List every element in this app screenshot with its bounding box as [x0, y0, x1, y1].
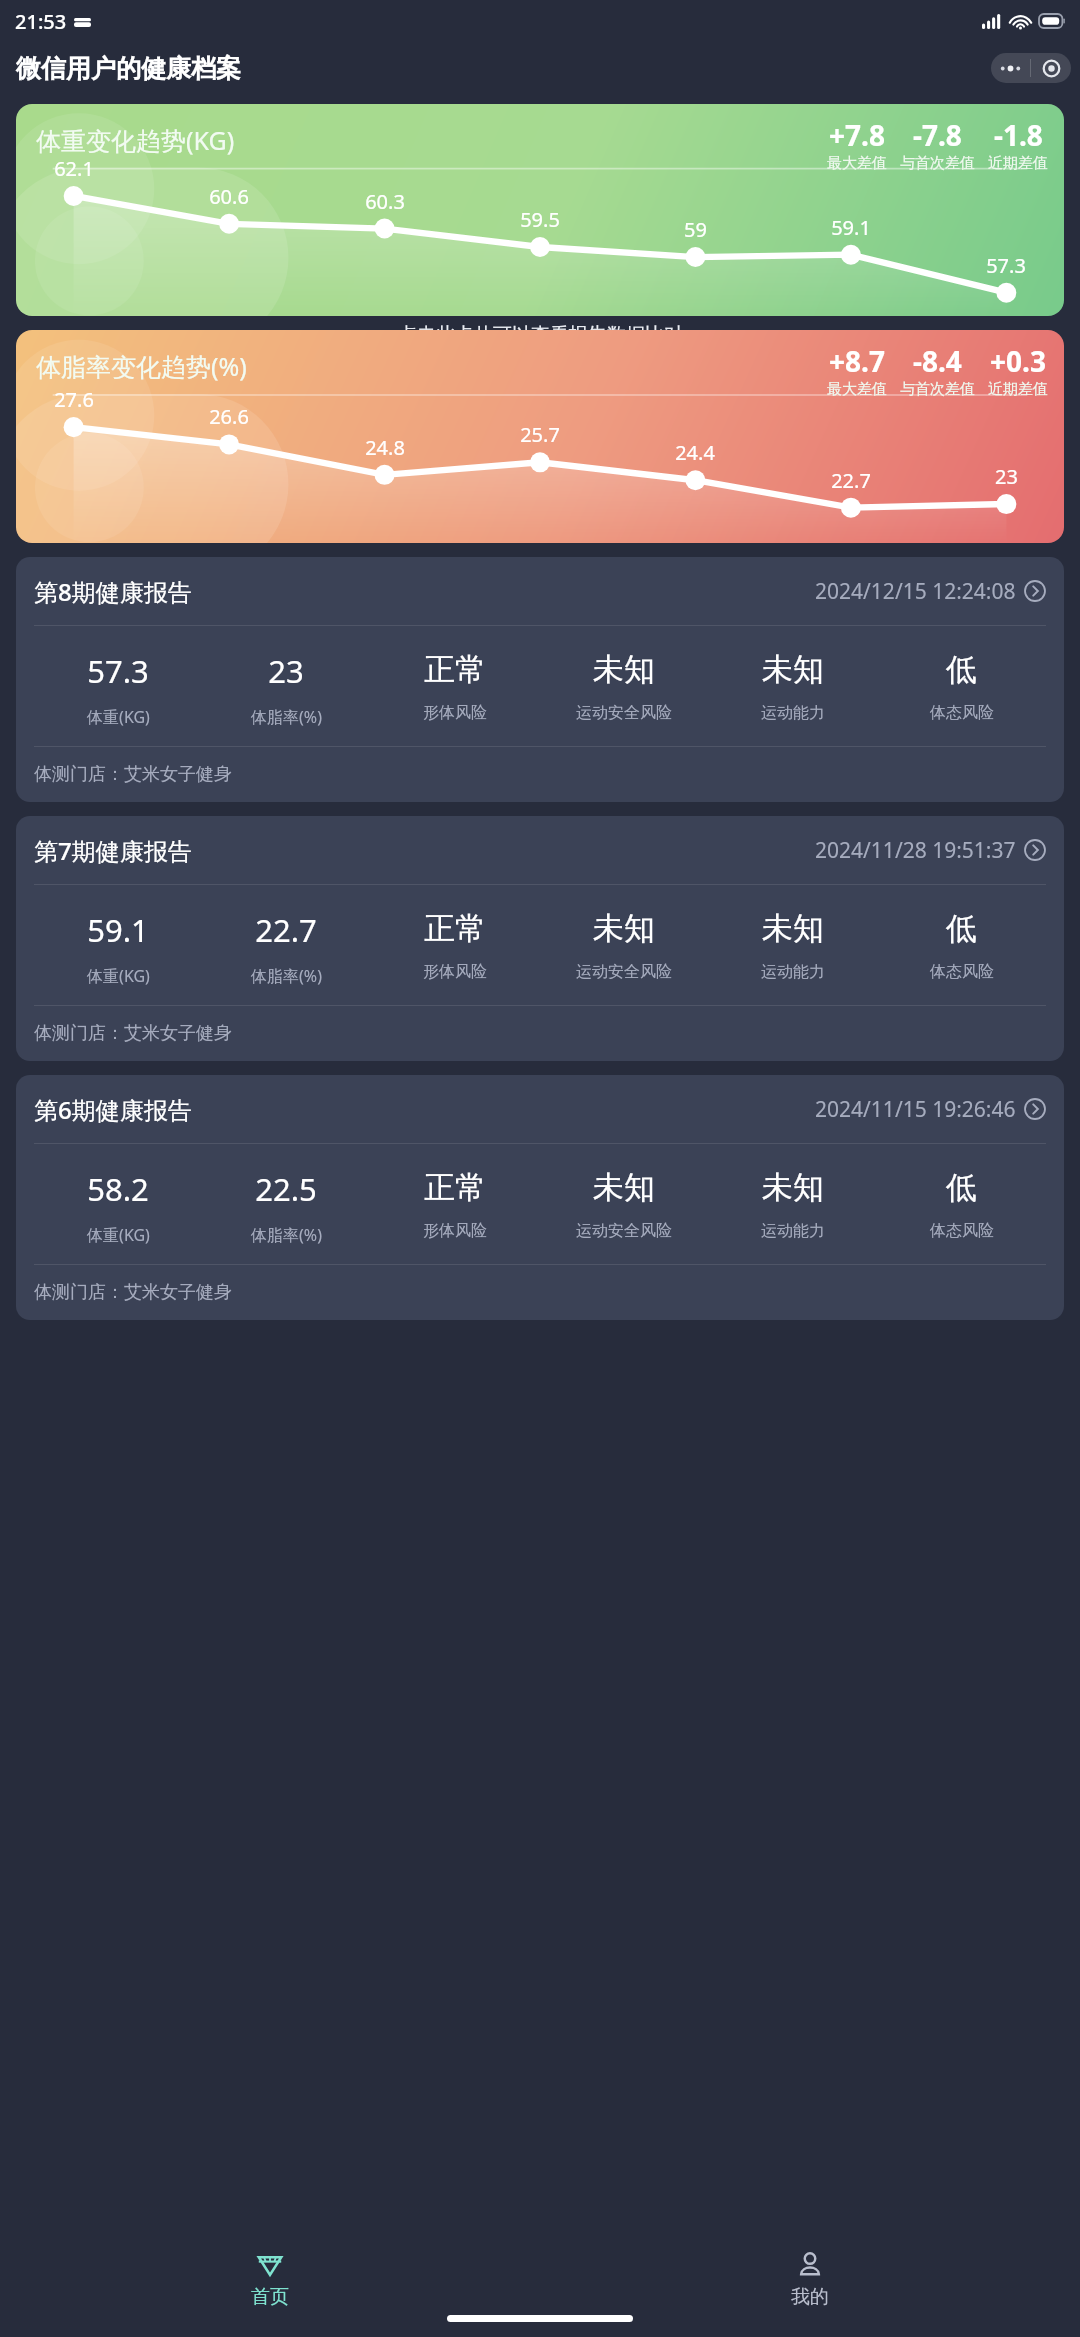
staticText: +8.7: [829, 342, 885, 380]
staticText: 运动安全风险: [576, 1221, 672, 1241]
staticText: 21:53: [15, 8, 67, 35]
staticText: 60.3: [365, 188, 405, 215]
staticText: 未知: [593, 909, 655, 948]
staticText: +0.3: [990, 342, 1046, 380]
staticText: 未知: [762, 1168, 824, 1207]
staticText: 形体风险: [423, 703, 487, 723]
staticText: 体态风险: [930, 1221, 994, 1241]
button[interactable]: Close: [1031, 53, 1071, 83]
staticText: 体态风险: [930, 703, 994, 723]
staticText: 点击此卡片可以查看报告数据比对: [398, 323, 683, 347]
staticText: -7.8: [913, 116, 962, 154]
staticText: 2024/11/28 19:51:37: [815, 836, 1016, 865]
staticText: 59: [684, 216, 707, 243]
staticText: 低: [946, 909, 977, 948]
staticText: 2024/11/15 19:26:46: [815, 1095, 1016, 1124]
staticText: 体测门店：艾米女子健身: [34, 763, 232, 786]
staticText: 体测门店：艾米女子健身: [34, 1281, 232, 1304]
staticText: 59.1: [831, 214, 871, 241]
staticText: 62.1: [54, 155, 94, 182]
staticText: 低: [946, 1168, 977, 1207]
staticText: 体态风险: [930, 962, 994, 982]
staticText: 正常: [424, 650, 486, 689]
staticText: 体重(KG): [87, 1224, 150, 1246]
staticText: 59.1: [87, 909, 149, 951]
button[interactable]: 第8期健康报告: [16, 557, 1064, 802]
button[interactable]: 首页: [0, 2237, 540, 2315]
staticText: 运动能力: [761, 703, 825, 723]
staticText: 57.3: [87, 650, 149, 692]
staticText: 形体风险: [423, 1221, 487, 1241]
staticText: 24.8: [365, 434, 405, 461]
staticText: 22.7: [255, 909, 317, 951]
staticText: 体重(KG): [87, 706, 150, 728]
staticText: 23: [268, 650, 304, 692]
staticText: 低: [946, 650, 977, 689]
staticText: 体测门店：艾米女子健身: [34, 1022, 232, 1045]
staticText: 微信用户的健康档案: [16, 53, 241, 84]
staticText: 未知: [762, 909, 824, 948]
staticText: 近期差值: [988, 154, 1048, 173]
staticText: 体脂率(%): [251, 706, 322, 728]
staticText: 体脂率变化趋势(%): [36, 349, 247, 383]
staticText: 运动安全风险: [576, 703, 672, 723]
staticText: 57.3: [986, 252, 1026, 279]
staticText: 运动能力: [761, 1221, 825, 1241]
staticText: 未知: [762, 650, 824, 689]
staticText: 与首次差值: [900, 154, 975, 173]
button[interactable]: 第6期健康报告: [16, 1075, 1064, 1320]
staticText: 22.7: [831, 467, 871, 494]
staticText: 体重(KG): [87, 965, 150, 987]
staticText: +7.8: [829, 116, 885, 154]
staticText: 运动能力: [761, 962, 825, 982]
staticText: 26.6: [209, 403, 249, 430]
staticText: 第7期健康报告: [34, 834, 192, 867]
staticText: 体脂率(%): [251, 1224, 322, 1246]
staticText: 23: [995, 463, 1018, 490]
staticText: -1.8: [994, 116, 1043, 154]
staticText: 59.5: [520, 206, 560, 233]
staticText: 2024/12/15 12:24:08: [815, 577, 1016, 606]
staticText: 58.2: [87, 1168, 149, 1210]
staticText: 22.5: [255, 1168, 317, 1210]
staticText: 最大差值: [827, 380, 887, 399]
button[interactable]: 第7期健康报告: [16, 816, 1064, 1061]
staticText: 体重变化趋势(KG): [36, 123, 235, 157]
staticText: 首页: [251, 2285, 289, 2309]
staticText: 正常: [424, 909, 486, 948]
staticText: 27.6: [54, 386, 94, 413]
button[interactable]: More: [991, 53, 1030, 83]
staticText: 第6期健康报告: [34, 1093, 192, 1126]
staticText: 我的: [791, 2285, 829, 2309]
staticText: -8.4: [913, 342, 962, 380]
staticText: 第8期健康报告: [34, 575, 192, 608]
staticText: 未知: [593, 1168, 655, 1207]
button[interactable]: 体重变化趋势(KG): [16, 104, 1064, 316]
staticText: 未知: [593, 650, 655, 689]
staticText: 形体风险: [423, 962, 487, 982]
staticText: 60.6: [209, 183, 249, 210]
staticText: 正常: [424, 1168, 486, 1207]
staticText: 近期差值: [988, 380, 1048, 399]
staticText: 运动安全风险: [576, 962, 672, 982]
staticText: 25.7: [520, 421, 560, 448]
button[interactable]: 体脂率变化趋势(%): [16, 330, 1064, 543]
button[interactable]: 我的: [540, 2237, 1080, 2315]
staticText: 与首次差值: [900, 380, 975, 399]
staticText: 24.4: [675, 439, 715, 466]
staticText: 体脂率(%): [251, 965, 322, 987]
staticText: 最大差值: [827, 154, 887, 173]
